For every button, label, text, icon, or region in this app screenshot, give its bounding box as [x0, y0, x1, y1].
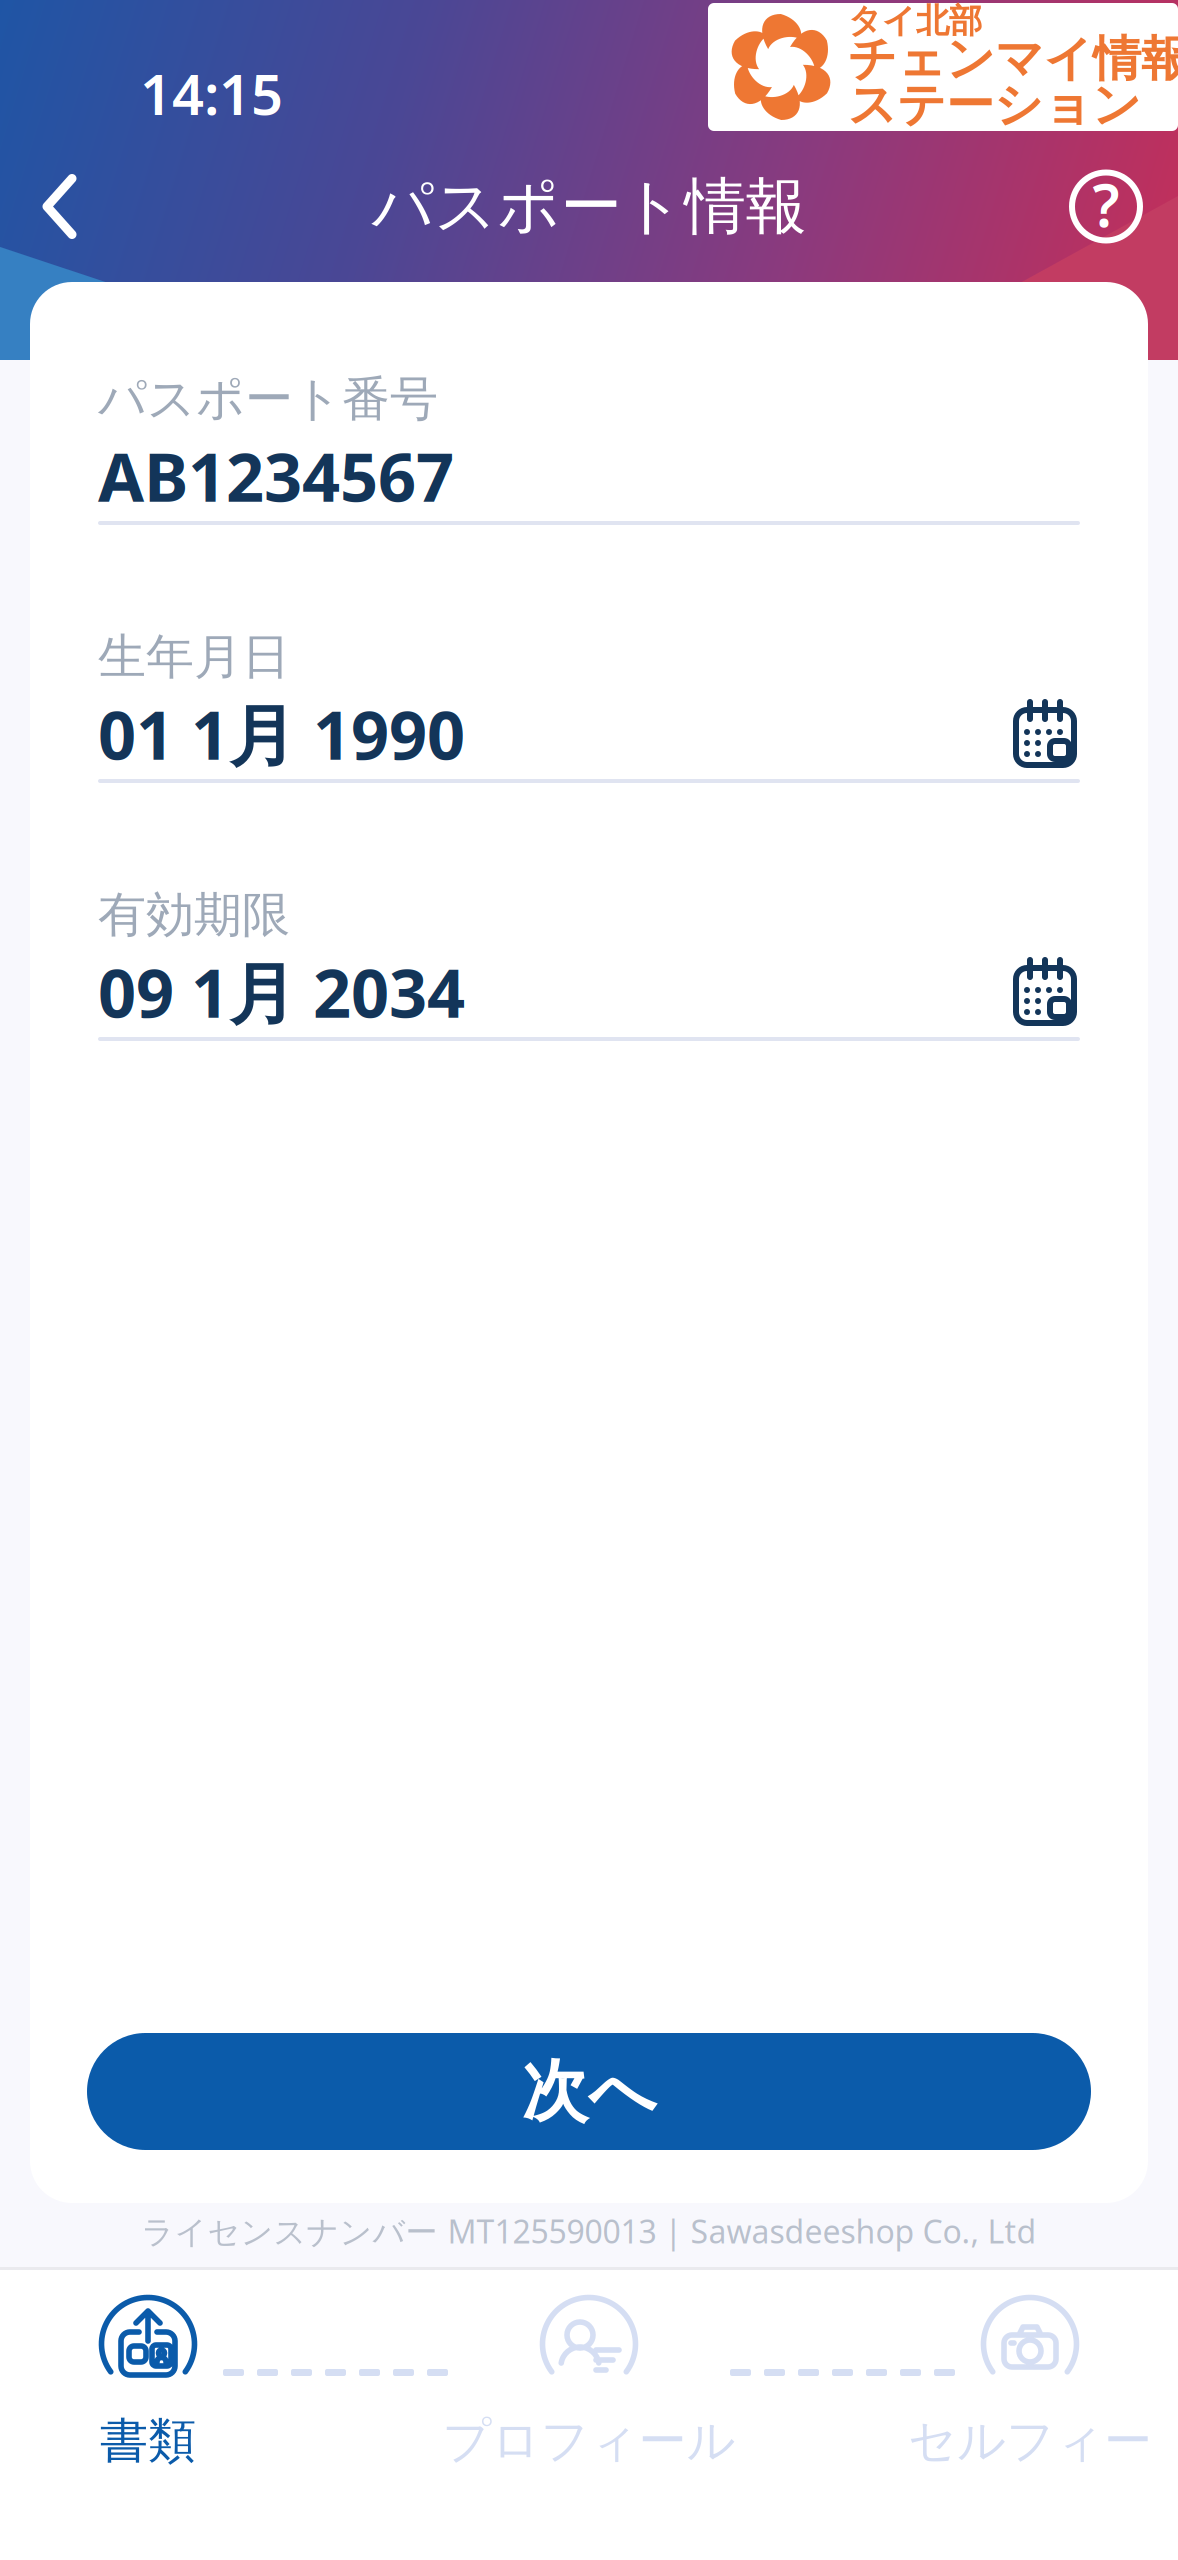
- button[interactable]: セルフィー: [882, 2294, 1178, 2470]
- staticText: 有効期限: [98, 885, 290, 944]
- staticText: AB1234567: [98, 432, 454, 520]
- button[interactable]: Pick date: [1010, 955, 1080, 1029]
- staticText: 01 1月 1990: [98, 690, 465, 778]
- staticText: 14:15: [140, 56, 283, 130]
- button[interactable]: Pick date: [1010, 697, 1080, 771]
- staticText: パスポート番号: [98, 369, 438, 428]
- staticText: プロフィール: [442, 2411, 735, 2470]
- button[interactable]: Back: [18, 157, 102, 255]
- staticText: セルフィー: [908, 2411, 1152, 2470]
- staticText: ?: [1092, 165, 1119, 243]
- staticText: ステーション: [848, 75, 1141, 134]
- staticText: パスポート情報: [371, 169, 806, 244]
- button[interactable]: 次へ: [87, 2033, 1091, 2150]
- staticText: 09 1月 2034: [98, 948, 465, 1036]
- staticText: 生年月日: [98, 627, 290, 686]
- staticText: チェンマイ情報: [848, 29, 1178, 88]
- staticText: 次へ: [521, 2051, 656, 2132]
- button[interactable]: プロフィール: [441, 2294, 737, 2470]
- staticText: 書類: [100, 2411, 196, 2470]
- button[interactable]: Help: [1052, 156, 1160, 256]
- button[interactable]: 書類: [0, 2294, 296, 2470]
- staticText: タイ北部: [848, 0, 982, 41]
- staticText: ライセンスナンバー MT125590013 | Sawasdeeshop Co.…: [141, 2210, 1036, 2252]
